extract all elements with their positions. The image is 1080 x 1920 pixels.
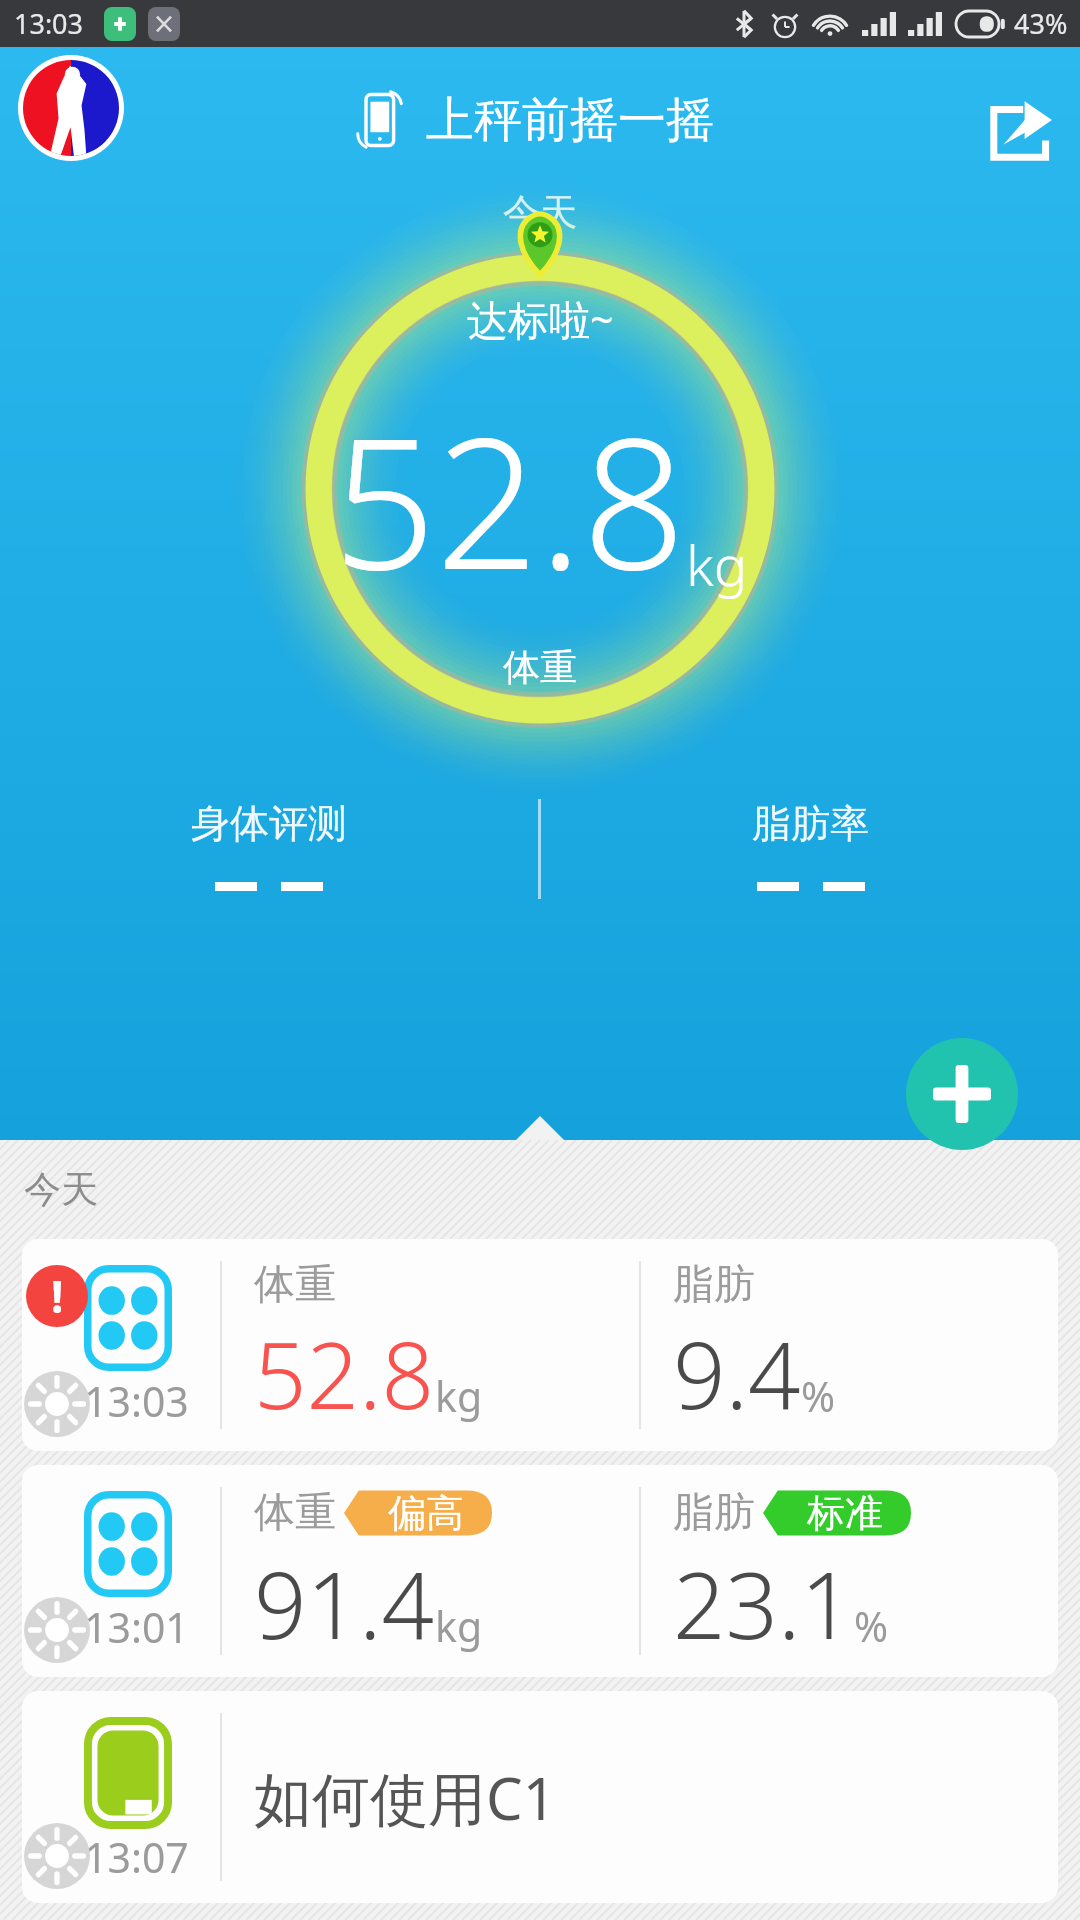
staticText: kg	[686, 526, 748, 602]
staticText: 91.4	[254, 1541, 435, 1666]
staticText: 今天	[24, 1166, 98, 1213]
staticText: 脂肪率	[752, 799, 869, 848]
staticText: 上秤前摇一摇	[426, 90, 714, 150]
staticText: 9.4	[673, 1311, 801, 1436]
button[interactable]: 身体评测	[0, 799, 538, 891]
staticText: 身体评测	[191, 799, 347, 848]
button[interactable]: Share	[984, 97, 1054, 167]
staticText: 达标啦~	[467, 291, 614, 347]
staticText: 13:07	[84, 1829, 189, 1885]
button[interactable]: 13:07	[22, 1691, 1058, 1903]
staticText: kg	[435, 1368, 483, 1424]
button[interactable]: Profile	[18, 55, 124, 161]
staticText: 偏高	[388, 1489, 464, 1537]
button[interactable]: 13:03	[22, 1239, 1058, 1451]
staticText: 13:01	[84, 1599, 189, 1655]
button[interactable]: 脂肪率	[541, 799, 1080, 891]
button[interactable]: Add measurement	[906, 1038, 1018, 1150]
staticText: 如何使用C1	[254, 1758, 556, 1837]
staticText: 今天	[503, 189, 577, 236]
staticText: 52.8	[254, 1311, 435, 1436]
staticText: 脂肪	[673, 1487, 755, 1539]
staticText: 体重	[254, 1487, 336, 1539]
staticText: %	[801, 1368, 836, 1424]
button[interactable]: 13:01	[22, 1465, 1058, 1677]
staticText: !	[51, 1266, 64, 1326]
staticText: 13:03	[84, 1373, 189, 1429]
staticText: 52.8	[333, 377, 686, 622]
staticText: 体重	[254, 1259, 336, 1311]
staticText: 标准	[807, 1489, 883, 1537]
staticText: 体重	[503, 644, 577, 691]
staticText: 23.1	[673, 1541, 854, 1666]
staticText: %	[854, 1598, 889, 1654]
staticText: 43%	[1014, 5, 1068, 42]
staticText: 脂肪	[673, 1259, 755, 1311]
staticText: kg	[435, 1598, 483, 1654]
staticText: 13:03	[14, 5, 84, 42]
